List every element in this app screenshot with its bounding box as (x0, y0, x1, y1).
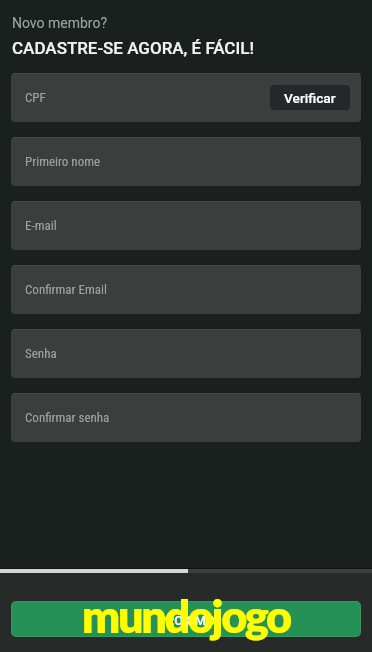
staticText: Verificar (284, 90, 336, 106)
button[interactable]: Senha (11, 329, 361, 378)
staticText: E-mail (25, 218, 57, 233)
staticText: CPF (25, 90, 46, 105)
button[interactable]: Confirmar senha (11, 393, 361, 442)
staticText: mundojogo (82, 589, 290, 643)
staticText: PRÓXIMO (158, 613, 215, 628)
button[interactable]: Confirmar Email (11, 265, 361, 314)
staticText: Novo membro? (12, 15, 108, 31)
button[interactable]: Verificar (270, 85, 350, 110)
staticText: Primeiro nome (25, 154, 101, 169)
button[interactable]: CPF (11, 73, 361, 122)
button[interactable]: Primeiro nome (11, 137, 361, 186)
staticText: Senha (25, 346, 57, 361)
staticText: Confirmar senha (25, 410, 110, 425)
staticText: CADASTRE-SE AGORA, É FÁCIL! (12, 38, 254, 58)
button[interactable]: E-mail (11, 201, 361, 250)
staticText: Confirmar Email (25, 282, 107, 297)
button[interactable]: PRÓXIMO (12, 602, 360, 636)
